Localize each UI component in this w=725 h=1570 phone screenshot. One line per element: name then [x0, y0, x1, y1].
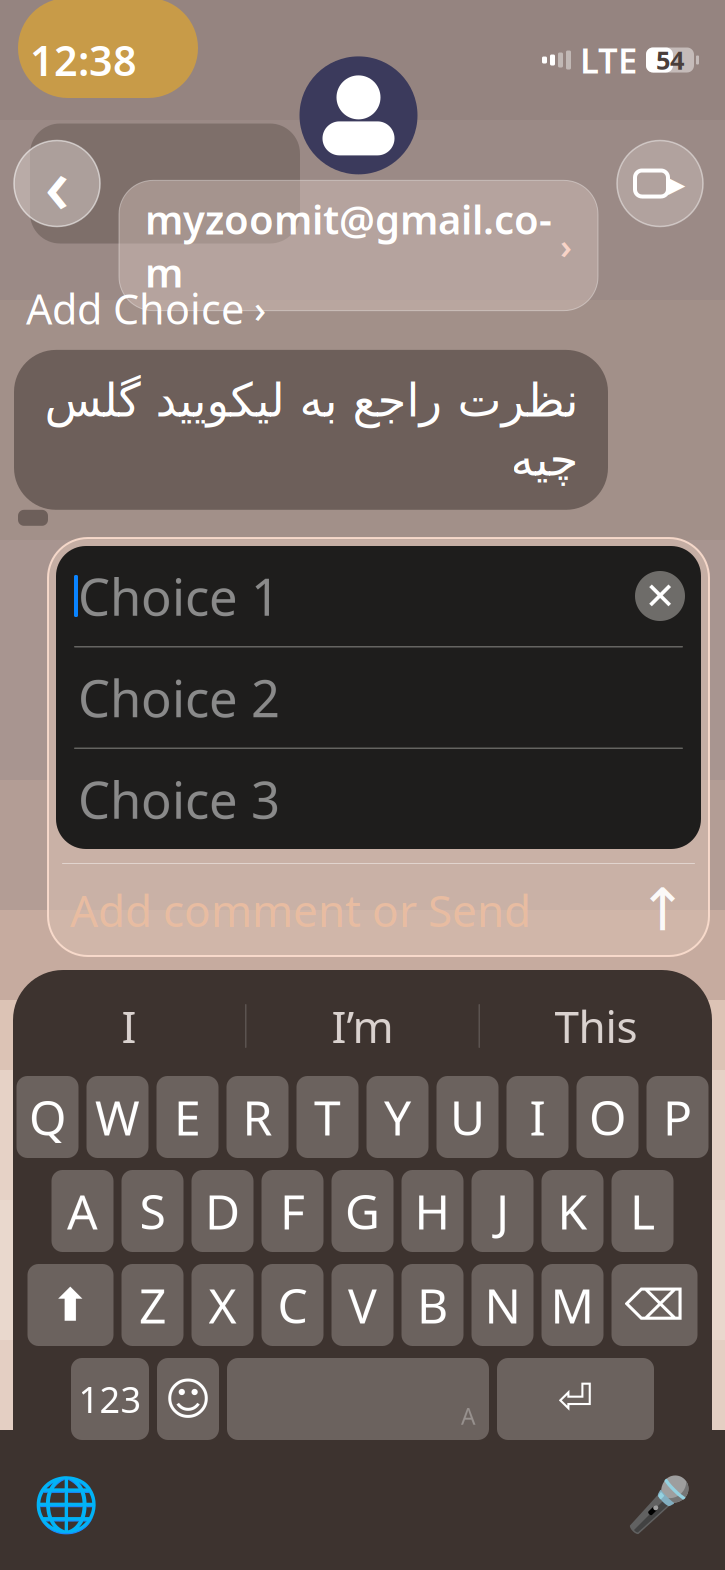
button[interactable]: E: [156, 1076, 218, 1158]
button[interactable]: Back: [14, 132, 100, 235]
staticText: Z: [139, 1273, 166, 1337]
staticText: 🎤: [626, 1474, 692, 1535]
button[interactable]: I: [506, 1076, 568, 1158]
button[interactable]: Switch keyboard: [31, 1470, 101, 1540]
button[interactable]: Return: [497, 1358, 654, 1440]
staticText: نظرت راجع به لیکویید گلس: [44, 374, 578, 427]
button[interactable]: P: [646, 1076, 708, 1158]
button[interactable]: FaceTime: [617, 140, 703, 226]
button[interactable]: D: [191, 1170, 253, 1252]
button[interactable]: X: [191, 1264, 253, 1346]
staticText: S: [139, 1179, 165, 1243]
staticText: ›: [560, 222, 572, 268]
staticText: G: [345, 1179, 380, 1243]
staticText: U: [450, 1085, 485, 1149]
staticText: چیه: [510, 433, 578, 486]
staticText: 🌐: [33, 1474, 99, 1535]
staticText: C: [277, 1273, 307, 1337]
button[interactable]: Shift: [27, 1264, 113, 1346]
staticText: I’m: [331, 997, 393, 1055]
staticText: X: [208, 1273, 236, 1337]
staticText: V: [348, 1273, 377, 1337]
staticText: Choice 2: [78, 664, 280, 731]
button[interactable]: M: [541, 1264, 603, 1346]
staticText: ‹: [44, 132, 69, 235]
button[interactable]: I: [13, 980, 245, 1072]
button[interactable]: N: [471, 1264, 533, 1346]
staticText: L: [630, 1179, 655, 1243]
staticText: N: [484, 1273, 520, 1337]
button[interactable]: Q: [16, 1076, 78, 1158]
button[interactable]: W: [86, 1076, 148, 1158]
staticText: M: [550, 1273, 594, 1337]
staticText: K: [557, 1179, 587, 1243]
staticText: Add comment or Send: [70, 881, 531, 939]
button[interactable]: U: [436, 1076, 498, 1158]
staticText: LTE: [580, 37, 637, 83]
button[interactable]: A: [51, 1170, 113, 1252]
staticText: D: [205, 1179, 240, 1243]
button[interactable]: Add Choice: [0, 271, 266, 350]
staticText: A: [67, 1179, 98, 1243]
staticText: E: [174, 1085, 201, 1149]
button[interactable]: Z: [121, 1264, 183, 1346]
staticText: Choice 3: [78, 765, 280, 833]
button[interactable]: K: [541, 1170, 603, 1252]
button[interactable]: Dictation: [624, 1470, 694, 1540]
staticText: T: [314, 1085, 341, 1149]
staticText: ⬆: [51, 1279, 89, 1331]
staticText: J: [496, 1179, 509, 1243]
button[interactable]: L: [611, 1170, 673, 1252]
button[interactable]: R: [226, 1076, 288, 1158]
staticText: W: [95, 1085, 140, 1149]
staticText: Q: [29, 1085, 66, 1149]
staticText: ▸: [668, 164, 685, 203]
staticText: O: [589, 1085, 626, 1149]
button[interactable]: Delete: [611, 1264, 697, 1346]
staticText: myzoomit@gmail.com: [145, 192, 552, 299]
button[interactable]: B: [401, 1264, 463, 1346]
button[interactable]: Choice 3: [78, 749, 701, 849]
staticText: 12:38: [30, 33, 137, 87]
button[interactable]: S: [121, 1170, 183, 1252]
button[interactable]: O: [576, 1076, 638, 1158]
button[interactable]: Close: [635, 571, 701, 621]
staticText: This: [554, 997, 637, 1055]
staticText: ☺: [164, 1373, 211, 1425]
staticText: H: [414, 1179, 450, 1243]
staticText: ↑: [638, 877, 687, 943]
staticText: F: [280, 1179, 305, 1243]
button[interactable]: 123: [71, 1358, 149, 1440]
button[interactable]: J: [471, 1170, 533, 1252]
staticText: 54: [656, 43, 684, 77]
button[interactable]: myzoomit@gmail.com: [119, 56, 598, 311]
button[interactable]: Send: [638, 867, 709, 953]
button[interactable]: H: [401, 1170, 463, 1252]
button[interactable]: Choice 1: [78, 546, 635, 646]
staticText: B: [417, 1273, 448, 1337]
staticText: I: [529, 1085, 545, 1149]
staticText: I: [121, 997, 136, 1055]
button[interactable]: This: [480, 980, 712, 1072]
staticText: 123: [78, 1375, 141, 1423]
button[interactable]: I’m: [246, 980, 478, 1072]
button[interactable]: Space: [227, 1358, 489, 1440]
button[interactable]: T: [296, 1076, 358, 1158]
button[interactable]: F: [261, 1170, 323, 1252]
button[interactable]: Choice 2: [78, 647, 701, 747]
button[interactable]: V: [331, 1264, 393, 1346]
staticText: R: [242, 1085, 272, 1149]
staticText: A: [461, 1401, 475, 1431]
staticText: ›: [254, 284, 266, 333]
staticText: Y: [384, 1085, 411, 1149]
staticText: ✕: [644, 575, 675, 617]
staticText: Add Choice: [26, 281, 244, 336]
button[interactable]: Add comment or Send: [48, 859, 531, 961]
staticText: Choice 1: [78, 562, 280, 630]
button[interactable]: Emoji: [157, 1358, 219, 1440]
button[interactable]: G: [331, 1170, 393, 1252]
button[interactable]: C: [261, 1264, 323, 1346]
button[interactable]: Y: [366, 1076, 428, 1158]
staticText: P: [663, 1085, 692, 1149]
staticText: ⏎: [557, 1375, 593, 1423]
